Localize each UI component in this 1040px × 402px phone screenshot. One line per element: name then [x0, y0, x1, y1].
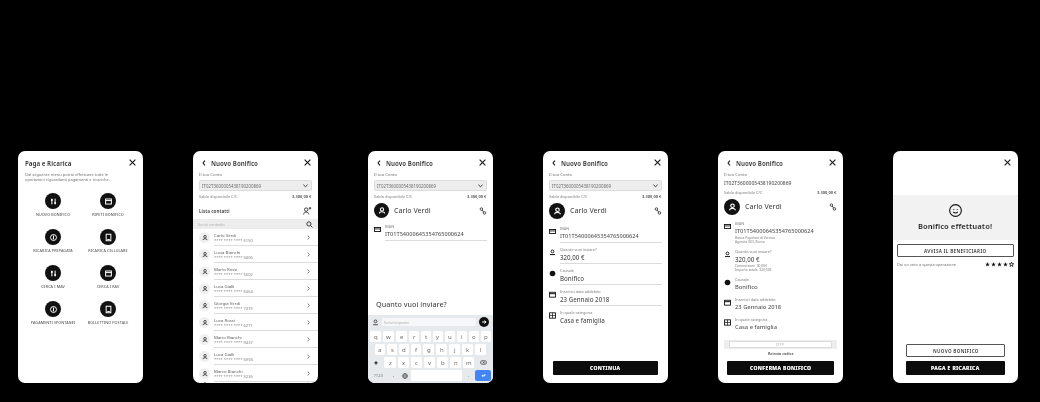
button[interactable]: b: [437, 357, 448, 368]
button[interactable]: NUOVO BONIFICO: [28, 191, 78, 219]
button[interactable]: Maiuscole: [370, 357, 382, 368]
button[interactable]: s: [387, 344, 397, 355]
staticText: Inserisci data addebito: [735, 297, 776, 302]
button[interactable]: .: [464, 370, 473, 381]
button[interactable]: NUOVO BONIFICO: [906, 344, 1005, 357]
button[interactable]: Indietro: [199, 158, 208, 167]
button[interactable]: e: [396, 331, 407, 342]
button[interactable]: z: [384, 357, 396, 368]
button[interactable]: l: [475, 344, 486, 355]
staticText: p: [484, 333, 488, 341]
button[interactable]: Chiudi: [128, 158, 137, 167]
button[interactable]: Indietro: [724, 158, 733, 167]
staticText: **** **** **** 6150: [214, 238, 253, 243]
button[interactable]: m: [463, 357, 474, 368]
button[interactable]: CONFERMA BONIFICO: [727, 361, 834, 375]
button[interactable]: d: [399, 344, 409, 355]
button[interactable]: Mario Rossi: [193, 263, 318, 279]
button[interactable]: Giorgia Verdi: [193, 382, 318, 383]
button[interactable]: j: [449, 344, 460, 355]
button[interactable]: PAGAMENTI SPONTANEI: [28, 299, 78, 327]
staticText: CERCA I MAV: [28, 284, 78, 289]
button[interactable]: Valuta: [985, 262, 1014, 267]
staticText: IBAN: [560, 226, 570, 231]
button[interactable]: RIPETI BONIFICO: [83, 191, 133, 219]
button[interactable]: h: [436, 344, 447, 355]
button[interactable]: Chiudi: [828, 158, 837, 167]
button[interactable]: Carlo Verdi: [193, 229, 318, 245]
button[interactable]: BOLLETTINO POSTALE: [83, 299, 133, 327]
button[interactable]: q: [370, 331, 381, 342]
button[interactable]: Luca Gialli: [193, 280, 318, 296]
button[interactable]: Scrivi contatto: [193, 219, 318, 229]
button[interactable]: o: [469, 331, 479, 342]
button[interactable]: Chiudi: [478, 158, 487, 167]
staticText: Paga e Ricarica: [25, 159, 72, 167]
button[interactable]: RICARICA PREPAGATA: [28, 227, 78, 255]
button[interactable]: Luca Rossi: [193, 314, 318, 330]
staticText: 320,00 €: [735, 255, 760, 263]
button[interactable]: CONTINUA: [553, 361, 658, 375]
button[interactable]: g: [423, 344, 434, 355]
staticText: x: [402, 359, 406, 367]
button[interactable]: Marco Bianchi: [193, 365, 318, 381]
staticText: Luca Rossi: [214, 317, 235, 323]
button[interactable]: Cancella: [476, 357, 491, 368]
button[interactable]: Indietro: [549, 158, 558, 167]
button[interactable]: Reinvia codice: [768, 351, 794, 356]
button[interactable]: Indietro: [374, 158, 383, 167]
button[interactable]: Aggiungi contatto: [301, 205, 312, 216]
button[interactable]: Mario Bianchi: [193, 331, 318, 347]
button[interactable]: t: [421, 331, 431, 342]
staticText: Saldo disponibile C/C: [724, 190, 763, 195]
button[interactable]: Chiudi: [1003, 158, 1012, 167]
staticText: **** **** **** 9437: [214, 340, 253, 345]
button[interactable]: w: [383, 331, 394, 342]
staticText: v: [428, 359, 432, 367]
button[interactable]: f: [411, 344, 421, 355]
button[interactable]: c: [411, 357, 422, 368]
button[interactable]: Chiudi: [303, 158, 312, 167]
button[interactable]: n: [450, 357, 461, 368]
staticText: IBAN: [735, 221, 745, 226]
button[interactable]: k: [462, 344, 473, 355]
staticText: 23 Gennaio 2018: [560, 295, 610, 303]
staticText: Saldo disponibile C/C: [199, 194, 238, 199]
button[interactable]: CERCA I RAV: [83, 263, 133, 291]
button[interactable]: ,: [389, 370, 398, 381]
staticText: Il tuo Conto: [549, 172, 573, 178]
button[interactable]: x: [398, 357, 409, 368]
button[interactable]: v: [424, 357, 435, 368]
button[interactable]: IT02T3600005438190200869: [549, 180, 662, 191]
button[interactable]: Chiudi: [653, 158, 662, 167]
staticText: w: [386, 333, 391, 341]
button[interactable]: RICARICA CELLULARE: [83, 227, 133, 255]
button[interactable]: a: [375, 344, 385, 355]
button[interactable]: y: [433, 331, 443, 342]
button[interactable]: Invio: [475, 370, 491, 381]
button[interactable]: OTP: [729, 341, 832, 348]
button[interactable]: AVVISA IL BENEFICIARIO: [897, 244, 1014, 257]
staticText: CONFERMA BONIFICO: [750, 365, 812, 372]
button[interactable]: IT02T3600005438190200869: [374, 180, 487, 191]
button[interactable]: Scrivi importo: [382, 318, 476, 326]
staticText: i: [461, 333, 463, 341]
button[interactable]: Lingua: [400, 370, 409, 381]
staticText: Agenzia 003, Roma: [735, 239, 765, 243]
button[interactable]: Giorgia Verdi: [193, 297, 318, 313]
staticText: Nuovo Bonifico: [386, 159, 433, 167]
button[interactable]: IT02T3600005438190200869: [199, 180, 312, 191]
button[interactable]: Luca Gialli: [193, 348, 318, 364]
button[interactable]: r: [409, 331, 419, 342]
button[interactable]: CERCA I MAV: [28, 263, 78, 291]
button[interactable]: i: [457, 331, 467, 342]
button[interactable]: Lucia Bianchi: [193, 246, 318, 262]
button[interactable]: ?123: [370, 370, 387, 381]
button[interactable]: PAGA E RICARICA: [906, 361, 1005, 375]
button[interactable]: Invia: [479, 317, 489, 327]
staticText: .: [468, 372, 470, 379]
button[interactable]: p: [481, 331, 491, 342]
button[interactable]: u: [445, 331, 455, 342]
staticText: IT01T54000645354765000624: [735, 227, 814, 235]
